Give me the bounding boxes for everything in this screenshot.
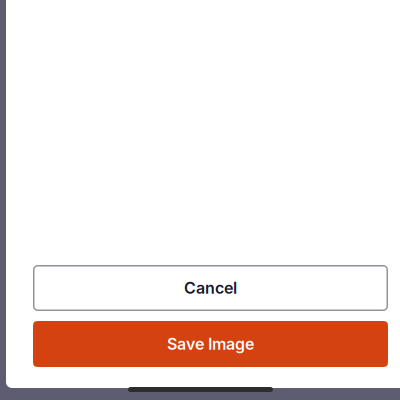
staticText: Cancel	[184, 278, 237, 298]
button[interactable]: Cancel	[33, 265, 388, 311]
staticText: Save Image	[167, 334, 254, 354]
button[interactable]: Save Image	[33, 321, 388, 367]
